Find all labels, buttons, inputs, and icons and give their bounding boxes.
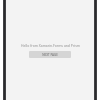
staticText: Hello from Xamarin.Forms and Prism — [21, 43, 80, 48]
button[interactable]: Next page — [29, 51, 71, 58]
staticText: NEXT PAGE — [42, 53, 58, 57]
